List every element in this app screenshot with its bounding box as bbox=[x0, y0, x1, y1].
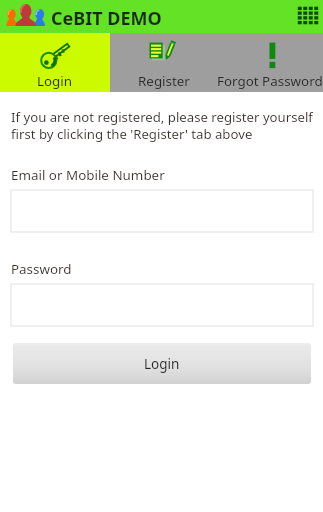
staticText: Email or Mobile Number bbox=[11, 166, 165, 184]
button[interactable] bbox=[11, 284, 313, 326]
button[interactable]: Login bbox=[0, 33, 110, 92]
button[interactable]: Register bbox=[110, 33, 217, 92]
staticText: Password bbox=[11, 260, 72, 278]
staticText: If you are not registered, please regist… bbox=[11, 108, 316, 142]
staticText: Register bbox=[138, 72, 190, 90]
button[interactable]: Forgot Password bbox=[217, 33, 323, 92]
button[interactable]: Login bbox=[13, 343, 311, 384]
staticText: Forgot Password bbox=[217, 72, 323, 90]
button[interactable]: Apps menu bbox=[293, 1, 322, 30]
staticText: Login bbox=[144, 355, 180, 373]
staticText: CeBIT DEMO bbox=[51, 6, 162, 31]
button[interactable] bbox=[11, 190, 313, 232]
staticText: Login bbox=[37, 72, 73, 90]
